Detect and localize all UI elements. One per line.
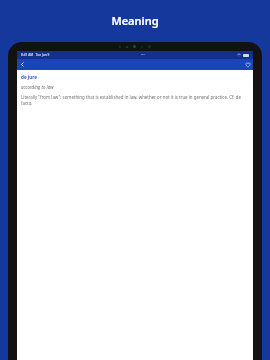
staticText: Meaning <box>111 13 159 28</box>
staticText: according to law <box>21 84 54 90</box>
staticText: ••• <box>141 53 145 57</box>
button[interactable]: Favorite <box>242 59 253 70</box>
button[interactable]: Back <box>17 59 28 70</box>
staticText: de jure <box>21 74 37 80</box>
staticText: 8:41 AM Tue Jan 9 <box>21 53 50 57</box>
staticText: Literally "from law"; something that is … <box>21 94 249 107</box>
